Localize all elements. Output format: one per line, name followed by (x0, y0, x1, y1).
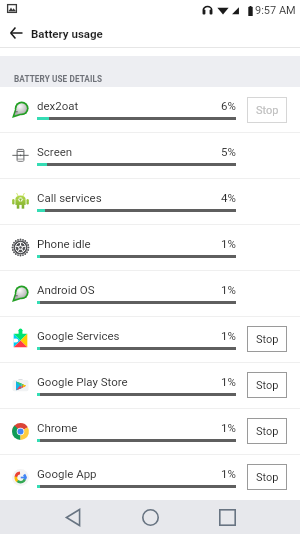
staticText: 1% (221, 375, 236, 388)
staticText: 4% (221, 191, 236, 204)
button[interactable]: Recent apps (204, 500, 250, 534)
button[interactable]: Stop (247, 97, 287, 123)
staticText: Stop (256, 379, 279, 392)
button[interactable]: Screen (0, 132, 300, 178)
button[interactable]: Home (127, 500, 173, 534)
staticText: 1% (221, 467, 236, 480)
staticText: Call services (37, 191, 102, 204)
staticText: Google App (37, 467, 97, 480)
staticText: Stop (256, 104, 279, 117)
button[interactable]: Call services (0, 178, 300, 224)
button[interactable]: dex2oat (0, 87, 300, 132)
staticText: Android OS (37, 283, 95, 296)
button[interactable]: Android OS (0, 270, 300, 316)
staticText: Screen (37, 145, 73, 158)
staticText: Stop (256, 471, 279, 484)
staticText: 1% (221, 329, 236, 342)
button[interactable]: Google Services (0, 316, 300, 362)
staticText: Chrome (37, 421, 78, 434)
staticText: Stop (256, 425, 279, 438)
staticText: Battery usage (31, 27, 103, 40)
button[interactable]: Stop (247, 326, 287, 352)
staticText: 1% (221, 421, 236, 434)
staticText: 9:57 AM (255, 4, 296, 17)
staticText: dex2oat (37, 99, 79, 112)
staticText: Google Services (37, 329, 120, 342)
staticText: Google Play Store (37, 375, 128, 388)
staticText: Phone idle (37, 237, 91, 250)
button[interactable]: Phone idle (0, 224, 300, 270)
staticText: Stop (256, 333, 279, 346)
staticText: 1% (221, 237, 236, 250)
staticText: 5% (221, 145, 236, 158)
button[interactable]: Stop (247, 464, 287, 490)
button[interactable]: Chrome (0, 408, 300, 454)
button[interactable]: Google Play Store (0, 362, 300, 408)
button[interactable]: Stop (247, 418, 287, 444)
staticText: 1% (221, 283, 236, 296)
staticText: BATTERY USE DETAILS (14, 74, 103, 84)
button[interactable]: Stop (247, 372, 287, 398)
button[interactable]: Back (50, 500, 96, 534)
staticText: 6% (221, 99, 236, 112)
button[interactable]: Google App (0, 454, 300, 500)
button[interactable]: Back (3, 20, 29, 48)
